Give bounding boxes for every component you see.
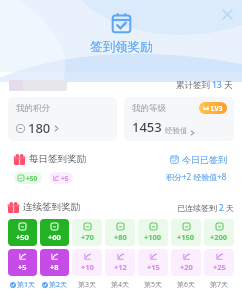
button[interactable]: +200 xyxy=(204,219,234,290)
staticText: 13 xyxy=(212,79,222,91)
staticText: 2 xyxy=(219,202,224,213)
staticText: 第2天 xyxy=(49,280,68,290)
staticText: 我的等级 xyxy=(132,103,166,114)
staticText: 1453 xyxy=(132,118,162,136)
staticText: +12 xyxy=(114,262,127,272)
staticText: 每日签到奖励 xyxy=(29,153,86,165)
staticText: 签到领奖励 xyxy=(90,39,153,55)
staticText: +70 xyxy=(81,232,94,242)
button[interactable]: +70 xyxy=(72,219,102,290)
staticText: 第6天 xyxy=(177,280,196,290)
staticText: +50 xyxy=(26,174,38,183)
staticText: 第7天 xyxy=(210,280,229,290)
staticText: +5 xyxy=(18,262,27,272)
staticText: +60 xyxy=(48,232,61,242)
button[interactable]: +100 xyxy=(138,219,168,290)
button[interactable]: +150 xyxy=(171,219,201,290)
staticText: +50 xyxy=(16,232,29,242)
staticText: 今日已签到 xyxy=(182,154,227,165)
staticText: 经验值 xyxy=(165,126,188,135)
staticText: +8 xyxy=(50,262,59,272)
button[interactable]: Close xyxy=(216,3,238,25)
staticText: 天 xyxy=(224,80,233,91)
staticText: 已连续签到 xyxy=(177,203,217,213)
button[interactable]: 每日签到奖励 xyxy=(8,148,234,196)
staticText: +10 xyxy=(81,262,94,272)
staticText: 第5天 xyxy=(144,280,163,290)
staticText: +25 xyxy=(213,262,226,272)
staticText: 积分+2 经验值+8 xyxy=(166,171,227,182)
button[interactable]: +60 xyxy=(40,219,69,290)
button[interactable]: +80 xyxy=(105,219,135,290)
staticText: +150 xyxy=(177,232,195,242)
staticText: +5 xyxy=(61,174,69,183)
staticText: +15 xyxy=(147,262,160,272)
staticText: +20 xyxy=(180,262,193,272)
staticText: 第4天 xyxy=(111,280,130,290)
button[interactable]: 我的等级 xyxy=(124,97,234,141)
staticText: +80 xyxy=(114,232,127,242)
staticText: +100 xyxy=(144,232,162,242)
button[interactable]: +50 xyxy=(8,219,37,290)
staticText: 累计签到 xyxy=(176,80,210,91)
staticText: 180 xyxy=(28,119,51,137)
staticText: 第1天 xyxy=(17,280,36,290)
staticText: LV3 xyxy=(211,104,223,113)
staticText: +200 xyxy=(210,232,228,242)
button[interactable]: 我的积分 xyxy=(8,97,117,141)
staticText: 第3天 xyxy=(78,280,97,290)
staticText: 连续签到奖励 xyxy=(23,201,80,213)
staticText: 天 xyxy=(226,203,234,213)
staticText: 我的积分 xyxy=(16,103,50,114)
